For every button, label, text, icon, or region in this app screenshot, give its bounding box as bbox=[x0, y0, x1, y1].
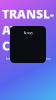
staticText: Anna bbox=[23, 30, 32, 35]
staticText: TRANSLATE CHAT bbox=[2, 6, 54, 54]
staticText: Instant two-way translation bbox=[5, 56, 50, 61]
